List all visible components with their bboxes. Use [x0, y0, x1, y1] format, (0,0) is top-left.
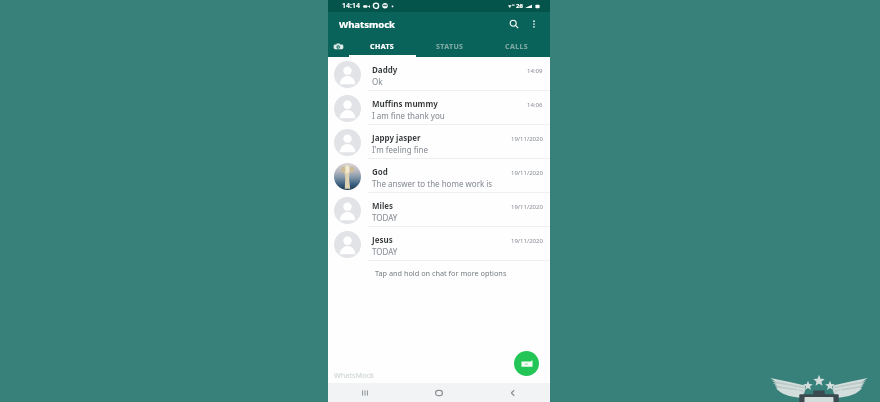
staticText: I'm feeling fine	[372, 144, 428, 155]
staticText: STATUS	[436, 42, 464, 52]
staticText: 19/11/2020	[511, 203, 543, 211]
button[interactable]: Jappy jasper	[328, 125, 550, 159]
staticText: TODAY	[372, 246, 398, 257]
staticText: 14:09	[527, 67, 543, 75]
staticText: TODAY	[372, 212, 398, 223]
staticText: I am fine thank you	[372, 110, 445, 121]
staticText: Whatsmock	[339, 18, 395, 31]
staticText: Tap and hold on chat for more options	[375, 268, 507, 278]
staticText: Daddy	[372, 64, 398, 75]
button[interactable]: Miles	[328, 193, 550, 227]
staticText: God	[372, 166, 388, 177]
staticText: 19/11/2020	[511, 237, 543, 245]
staticText: 19/11/2020	[511, 135, 543, 143]
button[interactable]: Recent apps	[328, 383, 402, 402]
button[interactable]: Jesus	[328, 227, 550, 261]
button[interactable]: More options	[525, 15, 543, 33]
button[interactable]: CHATS	[349, 36, 416, 57]
button[interactable]: New chat	[514, 351, 539, 376]
staticText: WhatsMock	[334, 370, 374, 380]
button[interactable]: Daddy	[328, 57, 550, 91]
staticText: Jappy jasper	[372, 132, 421, 143]
button[interactable]: Search	[505, 15, 523, 33]
button[interactable]: Back	[476, 383, 550, 402]
staticText: Jesus	[372, 234, 393, 245]
button[interactable]: CALLS	[483, 36, 550, 57]
staticText: Ok	[372, 76, 383, 87]
button[interactable]: God	[328, 159, 550, 193]
staticText: Miles	[372, 200, 394, 211]
staticText: 14:14	[342, 1, 360, 11]
button[interactable]: STATUS	[416, 36, 483, 57]
staticText: 26	[516, 2, 523, 10]
staticText: CALLS	[505, 42, 529, 52]
button[interactable]: Camera	[328, 36, 349, 57]
button[interactable]: Home	[402, 383, 476, 402]
staticText: The answer to the home work is	[372, 178, 493, 189]
staticText: Muffins mummy	[372, 98, 438, 109]
staticText: CHATS	[370, 42, 395, 52]
staticText: 19/11/2020	[511, 169, 543, 177]
button[interactable]: Muffins mummy	[328, 91, 550, 125]
staticText: 14:06	[527, 101, 543, 109]
